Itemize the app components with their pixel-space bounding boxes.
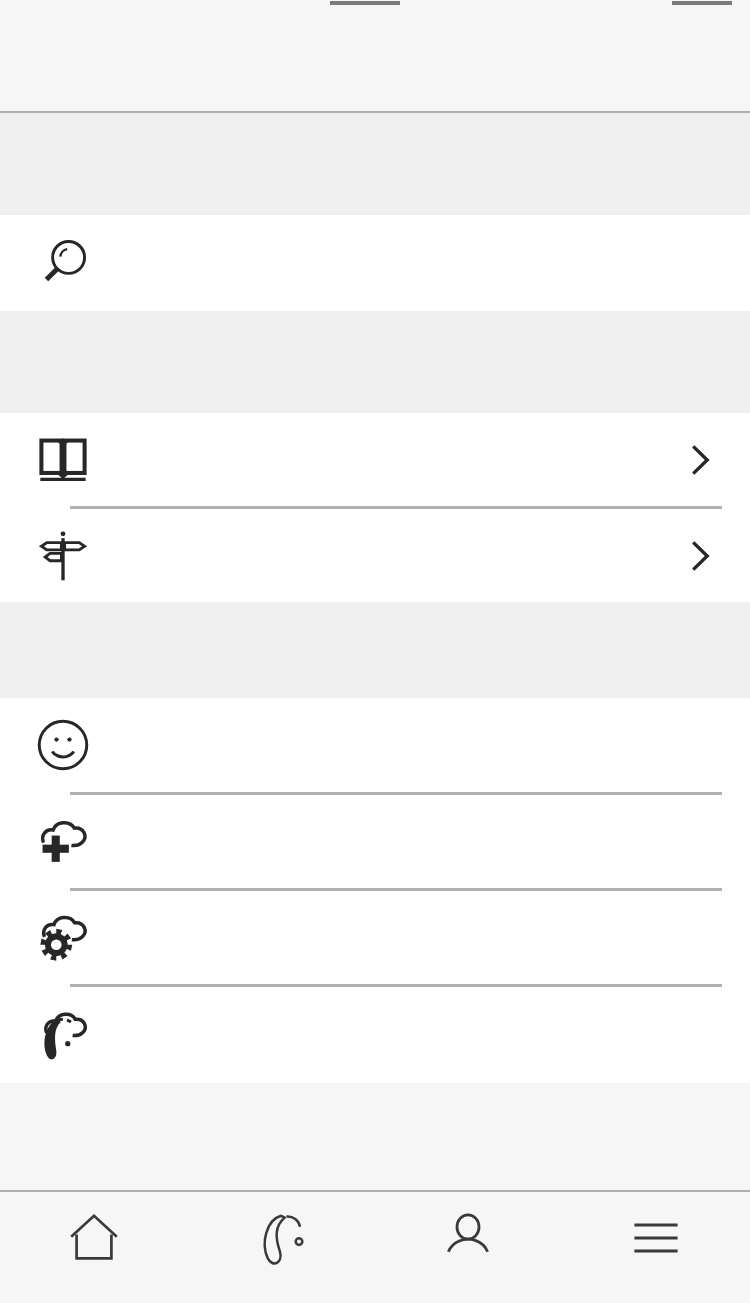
button[interactable]: Hearing aids [187,1192,374,1303]
button[interactable]: Satisfaction [0,698,750,792]
button[interactable]: Menu [562,1192,750,1303]
button[interactable]: Directions [0,509,750,602]
button[interactable]: Cloud settings [0,891,750,984]
button[interactable]: Search [0,215,750,311]
button[interactable]: Cloud hearing aid [0,987,750,1083]
button[interactable]: Home [0,1192,187,1303]
button[interactable]: Profile [374,1192,562,1303]
button[interactable]: Guide [0,413,750,506]
button[interactable]: Add to cloud [0,795,750,888]
